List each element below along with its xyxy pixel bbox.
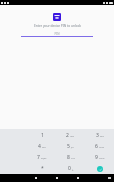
staticText: 8 [67,154,70,161]
button[interactable]: Keyboard [108,177,111,179]
staticText: JKL [71,146,74,149]
staticText: 7 [37,154,40,161]
button[interactable]: 0 [56,163,85,174]
staticText: 0 [68,165,71,172]
staticText: ABC [70,135,75,138]
button[interactable]: PIN [21,31,93,36]
button[interactable]: 8 [56,152,85,163]
staticText: 3 [96,132,99,139]
staticText: + [72,168,74,172]
button[interactable]: 2 [56,130,85,141]
staticText: TUV [71,157,75,160]
button[interactable]: 9 [85,152,114,163]
staticText: Enter your device PIN to unlock [34,24,81,28]
staticText: GHI [42,146,46,149]
button[interactable]: Home [54,175,60,181]
staticText: PQRS [41,157,47,160]
staticText: MNO [99,146,105,149]
other: App logo [53,13,61,21]
button[interactable]: 1 [28,130,56,141]
staticText: PIN [54,32,60,36]
button[interactable]: Recents [75,175,81,181]
staticText: DEF [100,135,104,138]
staticText: 2 [66,132,69,139]
staticText: 9 [95,154,98,161]
staticText: 1 [41,132,44,139]
staticText: 4 [38,143,41,150]
staticText: 5 [67,143,70,150]
button[interactable]: Submit PIN [97,166,103,172]
button[interactable]: 4 [28,141,56,152]
staticText: * [41,165,44,172]
button[interactable]: Back [33,175,39,181]
button[interactable]: 6 [85,141,114,152]
button[interactable]: Asterisk [28,163,56,174]
staticText: WXYZ [99,157,105,160]
staticText: 6 [95,143,98,150]
button[interactable]: 5 [56,141,85,152]
button[interactable]: 3 [85,130,114,141]
button[interactable]: 7 [28,152,56,163]
